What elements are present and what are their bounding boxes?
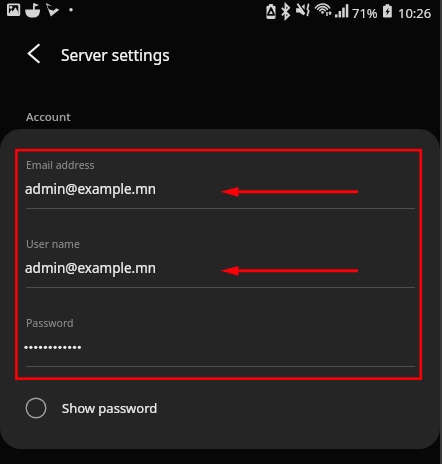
button[interactable]: Back: [16, 36, 50, 70]
button[interactable]: User name: [0, 229, 442, 308]
staticText: Server settings: [61, 44, 170, 65]
staticText: 71%: [352, 4, 378, 22]
staticText: User name: [26, 237, 80, 251]
staticText: Account: [26, 109, 71, 125]
button[interactable]: Password: [0, 308, 442, 387]
staticText: Email address: [26, 158, 95, 172]
staticText: admin@example.mn: [25, 180, 157, 198]
staticText: Password: [26, 316, 74, 330]
button[interactable]: Email address: [0, 150, 442, 229]
staticText: Show password: [62, 399, 158, 417]
button[interactable]: Show password: [16, 390, 186, 426]
staticText: admin@example.mn: [25, 259, 157, 277]
staticText: 10:26: [398, 4, 432, 22]
